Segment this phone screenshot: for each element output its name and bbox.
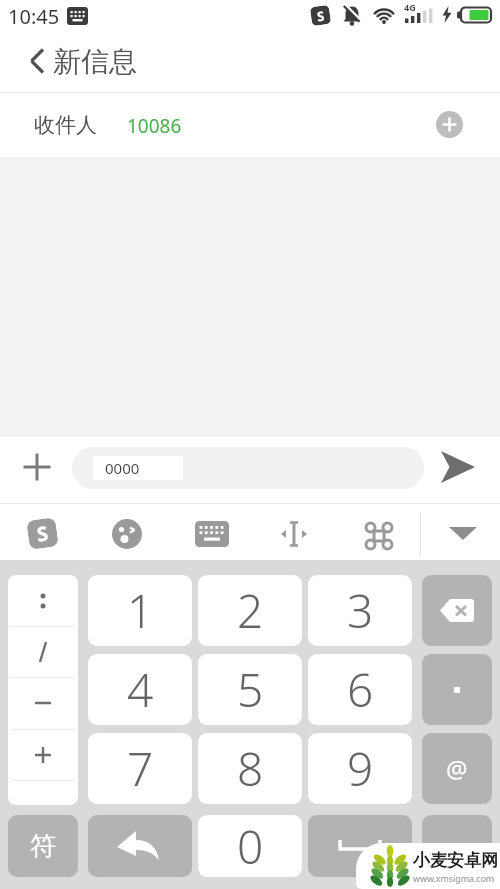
button[interactable] bbox=[443, 516, 483, 552]
button[interactable]: @ bbox=[422, 733, 492, 804]
staticText: @ bbox=[446, 752, 468, 785]
button[interactable] bbox=[308, 815, 412, 877]
staticText: 9 bbox=[347, 737, 374, 800]
staticText: 10:45 bbox=[8, 3, 60, 29]
button[interactable]: 5 bbox=[198, 654, 302, 725]
button[interactable]: 1 bbox=[88, 575, 192, 646]
button[interactable] bbox=[195, 517, 229, 551]
button[interactable] bbox=[8, 677, 78, 728]
button[interactable] bbox=[422, 815, 492, 877]
button[interactable] bbox=[8, 729, 78, 780]
button[interactable]: 2 bbox=[198, 575, 302, 646]
button[interactable]: 7 bbox=[88, 733, 192, 804]
button[interactable] bbox=[422, 575, 492, 646]
staticText: 5 bbox=[237, 658, 264, 721]
button[interactable] bbox=[0, 36, 220, 90]
button[interactable]: S bbox=[26, 517, 59, 550]
button[interactable] bbox=[436, 111, 463, 138]
button[interactable]: 4 bbox=[88, 654, 192, 725]
button[interactable] bbox=[362, 519, 396, 553]
button[interactable] bbox=[88, 815, 192, 877]
button[interactable] bbox=[277, 517, 311, 551]
staticText: 7 bbox=[127, 737, 154, 800]
staticText: 1 bbox=[127, 579, 154, 642]
button[interactable] bbox=[432, 444, 484, 490]
button[interactable]: 9 bbox=[308, 733, 412, 804]
staticText: 新信息 bbox=[53, 44, 137, 78]
button[interactable] bbox=[8, 575, 78, 626]
button[interactable]: 10086 bbox=[127, 112, 217, 140]
staticText: S bbox=[35, 519, 51, 548]
staticText: 0 bbox=[237, 815, 264, 877]
staticText: 小麦安卓网 bbox=[413, 850, 498, 871]
button[interactable] bbox=[110, 517, 144, 551]
staticText: 0000 bbox=[105, 458, 140, 478]
staticText: www.xmsigma.com bbox=[413, 872, 495, 884]
staticText: 10086 bbox=[127, 113, 182, 139]
staticText: 3 bbox=[347, 579, 374, 642]
staticText: 收件人 bbox=[34, 112, 97, 138]
button[interactable]: 6 bbox=[308, 654, 412, 725]
staticText: 符 bbox=[30, 830, 56, 863]
staticText: 4 bbox=[127, 658, 154, 721]
button[interactable] bbox=[18, 448, 56, 486]
staticText: 4G bbox=[404, 1, 416, 13]
button[interactable] bbox=[8, 626, 78, 677]
button[interactable]: 8 bbox=[198, 733, 302, 804]
staticText: 6 bbox=[347, 658, 374, 721]
button[interactable]: 0000 bbox=[72, 447, 424, 489]
staticText: S bbox=[316, 6, 326, 25]
button[interactable]: 0 bbox=[198, 815, 302, 877]
button[interactable] bbox=[422, 654, 492, 725]
staticText: 2 bbox=[237, 579, 264, 642]
button[interactable]: 3 bbox=[308, 575, 412, 646]
staticText: 8 bbox=[237, 737, 264, 800]
button[interactable]: 符 bbox=[8, 815, 78, 877]
